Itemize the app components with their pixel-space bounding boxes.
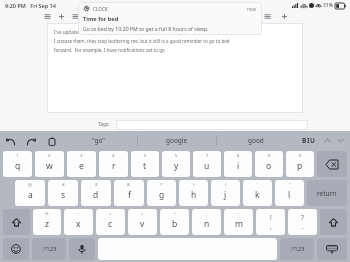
staticText: h	[191, 189, 197, 201]
button[interactable]: =	[128, 209, 157, 235]
staticText: s	[61, 189, 66, 201]
staticText: .?123	[42, 245, 57, 253]
staticText: q	[15, 160, 21, 172]
button[interactable]: 9	[255, 151, 283, 177]
staticText: 6	[175, 153, 178, 159]
staticText: o	[266, 160, 272, 172]
button[interactable]: Undo	[3, 134, 17, 148]
button[interactable]: Insert	[58, 13, 65, 20]
button[interactable]: 3	[67, 151, 96, 177]
staticText: ,	[270, 222, 272, 231]
button[interactable]: #	[48, 180, 78, 206]
staticText: *	[160, 182, 163, 188]
button[interactable]: B	[300, 134, 317, 147]
staticText: y	[174, 160, 179, 172]
staticText: d	[93, 189, 99, 201]
staticText: "go"	[92, 136, 105, 145]
staticText: t	[143, 160, 147, 172]
staticText: p	[297, 160, 303, 172]
button[interactable]: "	[275, 180, 304, 206]
button[interactable]: return	[307, 180, 347, 206]
staticText: z	[45, 218, 49, 230]
button[interactable]: '	[243, 180, 272, 206]
button[interactable]: More options	[281, 13, 288, 20]
button[interactable]: Shift	[320, 209, 347, 235]
button[interactable]: .?123	[280, 238, 314, 260]
button[interactable]: 8	[224, 151, 252, 177]
button[interactable]: $	[81, 180, 111, 206]
staticText: f	[128, 189, 131, 201]
staticText: m	[235, 218, 243, 230]
button[interactable]: Redo	[24, 134, 38, 148]
button[interactable]: Emoji	[3, 238, 29, 260]
staticText: 4	[112, 153, 115, 159]
staticText: -	[78, 211, 80, 217]
staticText: google	[166, 136, 188, 145]
button[interactable]: 6	[162, 151, 190, 177]
button[interactable]: &	[114, 180, 144, 206]
button[interactable]	[116, 120, 308, 130]
button[interactable]: (	[179, 180, 208, 206]
staticText: v	[140, 218, 145, 230]
staticText: .	[302, 222, 304, 231]
staticText: #	[62, 182, 65, 188]
button[interactable]: Hide keyboard	[317, 238, 347, 260]
button[interactable]: .?123	[32, 238, 66, 260]
button[interactable]: google	[138, 131, 216, 150]
button[interactable]: CLOCK	[78, 2, 262, 35]
button[interactable]: good	[217, 131, 295, 150]
staticText: I've updated my Sleep schedule in the Cl…	[54, 29, 235, 35]
staticText: 2	[48, 153, 51, 159]
button[interactable]: 0	[286, 151, 314, 177]
button[interactable]: Paste	[45, 134, 59, 148]
button[interactable]: /	[160, 209, 189, 235]
button[interactable]: I've updated my Sleep schedule in the Cl…	[47, 23, 303, 113]
button[interactable]: Format	[44, 13, 51, 20]
button[interactable]: *	[147, 180, 176, 206]
staticText: n	[204, 218, 210, 230]
button[interactable]: Next	[334, 134, 347, 147]
staticText: j	[224, 189, 227, 201]
button[interactable]: 1	[3, 151, 32, 177]
button[interactable]: @	[15, 180, 45, 206]
button[interactable]: Undo	[264, 13, 271, 20]
staticText: "	[289, 182, 291, 188]
button[interactable]: 5	[131, 151, 159, 177]
staticText: 31%	[323, 2, 333, 9]
button[interactable]: Shift	[3, 209, 30, 235]
button[interactable]: +	[96, 209, 125, 235]
button[interactable]: Image	[72, 13, 79, 20]
staticText: ;	[206, 211, 208, 217]
staticText: (	[193, 182, 195, 188]
button[interactable]: 2	[35, 151, 64, 177]
button[interactable]: ?	[288, 209, 317, 235]
button[interactable]: 4	[99, 151, 128, 177]
button[interactable]: ;	[192, 209, 221, 235]
staticText: $	[95, 182, 98, 188]
staticText: Tags:	[98, 121, 110, 128]
staticText: )	[225, 182, 227, 188]
button[interactable]: -	[64, 209, 93, 235]
staticText: /	[174, 211, 176, 217]
staticText: CLOCK	[93, 6, 108, 12]
staticText: %	[45, 211, 49, 217]
button[interactable]: Previous	[321, 134, 334, 147]
button[interactable]: !	[256, 209, 285, 235]
staticText: k	[255, 189, 260, 201]
button[interactable]: Backspace	[317, 151, 347, 177]
staticText: I	[307, 136, 310, 145]
button[interactable]: 7	[193, 151, 221, 177]
button[interactable]: :	[224, 209, 253, 235]
button[interactable]: Dictation	[69, 238, 95, 260]
button[interactable]: %	[33, 209, 61, 235]
staticText: U	[310, 136, 315, 145]
staticText: x	[76, 218, 81, 230]
staticText: =	[141, 211, 144, 217]
button[interactable]: )	[211, 180, 240, 206]
button[interactable]: "go"	[59, 131, 137, 150]
staticText: now	[247, 6, 257, 12]
staticText: l	[288, 189, 291, 201]
staticText: .?123	[290, 245, 305, 253]
staticText: @	[28, 182, 32, 188]
